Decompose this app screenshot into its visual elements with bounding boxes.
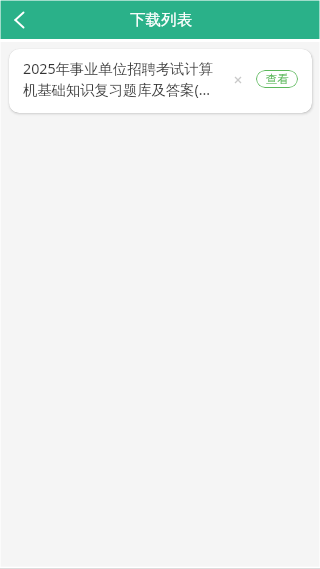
button[interactable]: 查看	[256, 70, 298, 88]
staticText: 2025年事业单位招聘考试计算机基础知识复习题库及答案(全套)	[23, 59, 227, 99]
staticText: 下载列表	[130, 10, 193, 30]
button[interactable]: 2025年事业单位招聘考试计算机基础知识复习题库及答案(全套)	[9, 49, 312, 113]
button[interactable]: Delete	[227, 68, 249, 90]
staticText: 查看	[266, 72, 289, 86]
button[interactable]: Back	[0, 0, 39, 39]
